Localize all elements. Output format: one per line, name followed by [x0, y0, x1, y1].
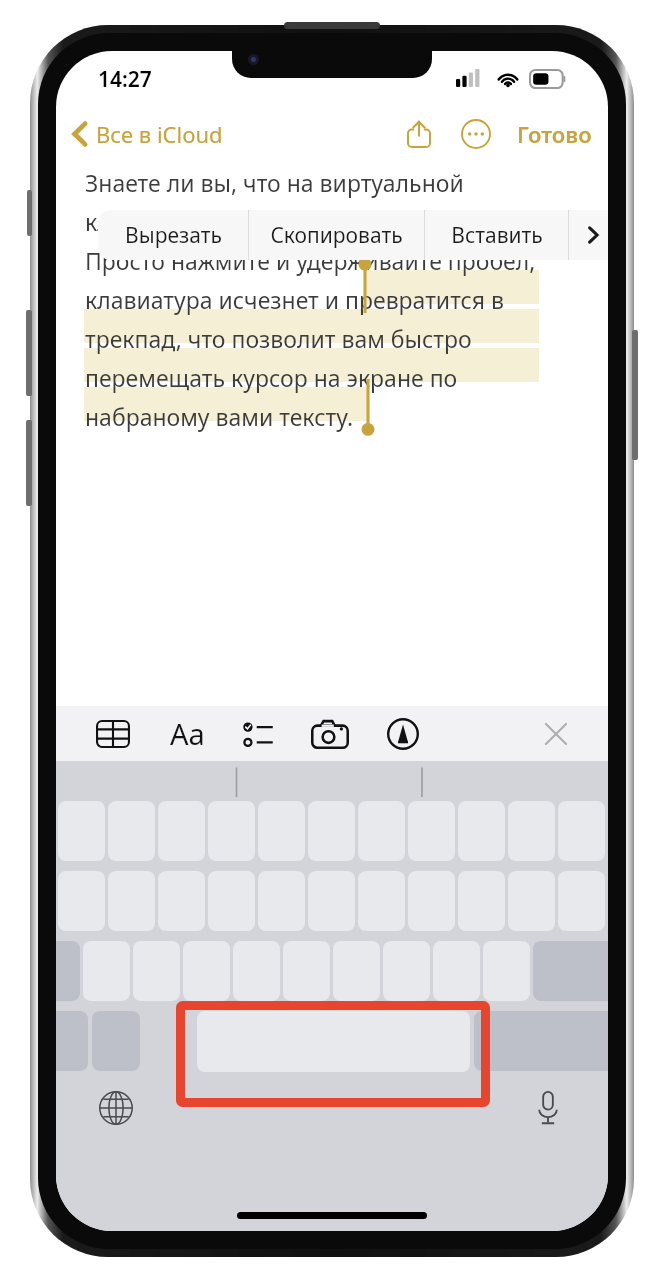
staticText: клавиатура исчезнет и превратится в	[85, 284, 504, 315]
staticText: набраному вами тексту.	[85, 401, 354, 432]
button[interactable]: Скопировать	[249, 210, 424, 260]
button[interactable]: More options	[455, 113, 497, 155]
staticText: Готово	[517, 119, 592, 149]
button[interactable]: Close	[538, 716, 574, 752]
button[interactable]: Вставить	[425, 210, 568, 260]
staticText: Скопировать	[270, 221, 403, 250]
staticText: Все в iCloud	[96, 119, 223, 149]
button[interactable]: Switch keyboard	[94, 1086, 138, 1130]
staticText: Знаете ли вы, что на виртуальной	[85, 167, 464, 198]
staticText: клавиатуре есть скрытый трекпад?	[85, 206, 476, 237]
button[interactable]: Return	[474, 1011, 608, 1071]
button[interactable]: Checklist	[237, 715, 279, 753]
staticText: перемещать курсор на экране по	[85, 362, 458, 393]
staticText: Aa	[170, 714, 205, 753]
button[interactable]: Share	[399, 112, 439, 156]
staticText: Просто нажмите и удерживайте пробел,	[85, 245, 536, 276]
button[interactable]: More	[569, 210, 608, 260]
staticText: трекпад, что позволит вам быстро	[85, 323, 472, 354]
button[interactable]: Готово	[511, 113, 598, 155]
button[interactable]: Все в iCloud	[66, 113, 229, 155]
staticText: 14:27	[98, 65, 152, 94]
button[interactable]: Markup	[383, 714, 423, 754]
staticText: Вставить	[451, 221, 543, 250]
button[interactable]: Insert table	[92, 716, 134, 752]
button[interactable]: Camera	[307, 715, 353, 753]
button[interactable]: Format	[166, 710, 209, 757]
button[interactable]: Вырезать	[98, 210, 248, 260]
button[interactable]: Dictation	[526, 1086, 570, 1130]
staticText: Вырезать	[125, 221, 222, 250]
